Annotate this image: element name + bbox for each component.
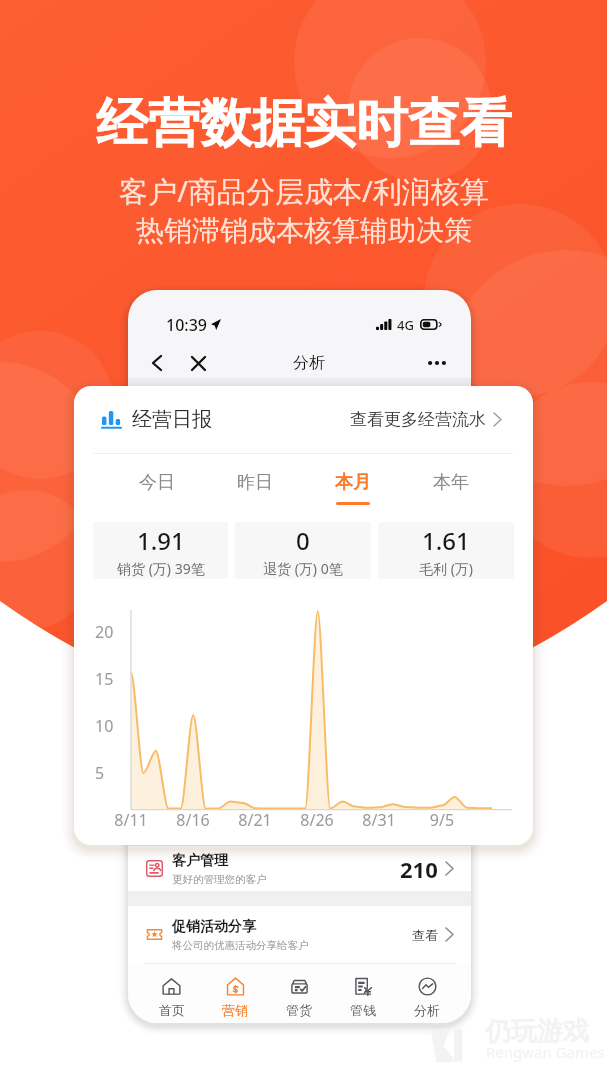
staticText: 管货: [286, 1002, 312, 1018]
staticText: 管钱: [350, 1002, 376, 1018]
staticText: 昨日: [237, 471, 273, 494]
staticText: 5: [95, 762, 105, 784]
staticText: 今日: [139, 471, 175, 494]
staticText: 促销活动分享: [172, 918, 256, 936]
staticText: 0: [296, 524, 310, 557]
staticText: 本年: [433, 471, 469, 494]
staticText: 经营日报: [132, 407, 212, 432]
staticText: 经营数据实时查看: [96, 91, 512, 157]
staticText: Rengwan Games: [486, 1042, 605, 1062]
button[interactable]: 管货: [267, 964, 331, 1023]
button[interactable]: 促销活动分享: [128, 906, 471, 963]
staticText: 客户/商品分层成本/利润核算: [119, 171, 489, 211]
button[interactable]: More options: [424, 350, 450, 376]
staticText: 分析: [414, 1002, 440, 1018]
staticText: 毛利 (万): [419, 559, 474, 578]
staticText: 8/21: [237, 809, 273, 831]
staticText: 1.61: [422, 524, 470, 557]
button[interactable]: 分析: [395, 964, 459, 1023]
button[interactable]: Close: [186, 351, 210, 375]
staticText: 分析: [293, 353, 325, 373]
button[interactable]: 本月: [304, 454, 402, 522]
staticText: 20: [95, 621, 114, 643]
staticText: 9/5: [424, 809, 460, 831]
staticText: 8/31: [361, 809, 397, 831]
staticText: 4G: [397, 316, 414, 334]
staticText: 8/11: [113, 809, 149, 831]
button[interactable]: 管钱: [331, 964, 395, 1023]
staticText: 退货 (万) 0笔: [263, 559, 343, 578]
staticText: 更好的管理您的客户: [172, 873, 267, 886]
button[interactable]: 本年: [402, 454, 500, 522]
button[interactable]: 客户管理: [128, 846, 471, 891]
staticText: 15: [95, 668, 114, 690]
staticText: 查看: [412, 927, 438, 943]
staticText: 将公司的优惠活动分享给客户: [172, 939, 309, 952]
staticText: 销货 (万) 39笔: [117, 559, 205, 578]
staticText: 查看更多经营流水: [350, 409, 486, 430]
button[interactable]: 首页: [140, 964, 203, 1023]
staticText: 8/26: [299, 809, 335, 831]
staticText: 10:39: [166, 314, 207, 336]
button[interactable]: 经营日报: [74, 386, 533, 453]
staticText: 仍玩游戏: [485, 1015, 589, 1048]
button[interactable]: Back: [145, 351, 169, 375]
staticText: 首页: [159, 1002, 185, 1018]
staticText: 客户管理: [172, 852, 228, 870]
staticText: 热销滞销成本核算辅助决策: [136, 213, 472, 248]
button[interactable]: 营销: [203, 964, 267, 1023]
staticText: 本月: [335, 471, 371, 494]
button[interactable]: 昨日: [206, 454, 304, 522]
staticText: 10: [95, 715, 114, 737]
staticText: 210: [400, 854, 438, 884]
staticText: 营销: [222, 1002, 248, 1018]
staticText: 8/16: [175, 809, 211, 831]
button[interactable]: 今日: [107, 454, 206, 522]
staticText: 1.91: [137, 524, 185, 557]
